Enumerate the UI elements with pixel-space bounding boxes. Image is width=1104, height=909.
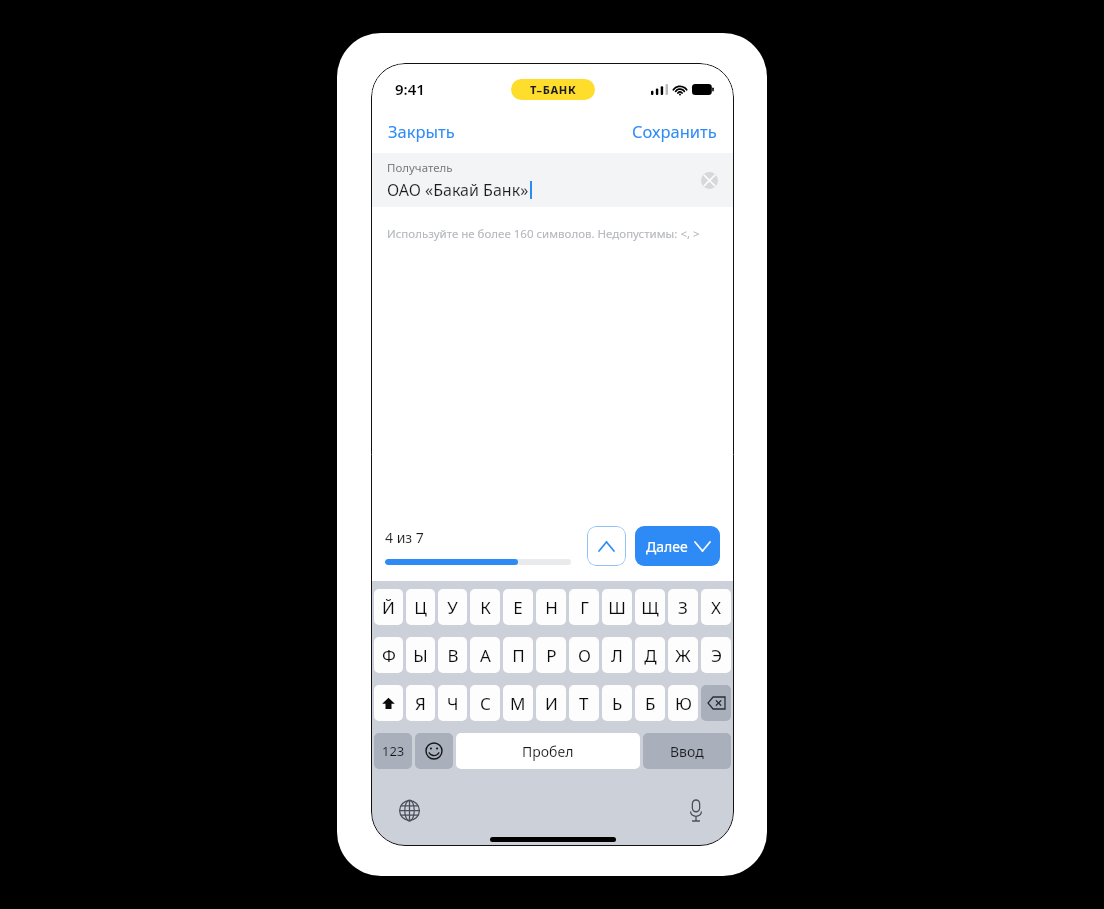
staticText: Щ <box>641 596 659 619</box>
staticText: 123 <box>382 742 405 760</box>
button[interactable]: З <box>668 589 698 625</box>
staticText: Ц <box>414 596 427 619</box>
button[interactable]: П <box>503 637 533 673</box>
staticText: Пробел <box>522 742 574 761</box>
button[interactable]: Т <box>569 685 599 721</box>
button[interactable]: Ж <box>668 637 698 673</box>
button[interactable]: Б <box>635 685 665 721</box>
staticText: Ввод <box>670 742 704 761</box>
button[interactable]: Ч <box>438 685 467 721</box>
staticText: Б <box>645 692 656 715</box>
staticText: Й <box>382 596 395 619</box>
staticText: М <box>510 692 526 715</box>
staticText: О <box>578 644 591 667</box>
button[interactable]: С <box>470 685 500 721</box>
staticText: Закрыть <box>388 120 455 142</box>
button[interactable]: Назад <box>587 526 626 566</box>
button[interactable]: 123 <box>374 733 412 769</box>
staticText: 4 из 7 <box>385 528 424 547</box>
button[interactable]: Е <box>503 589 533 625</box>
button[interactable]: Получатель <box>371 153 734 207</box>
button[interactable]: В <box>438 637 467 673</box>
staticText: Ы <box>413 644 428 667</box>
button[interactable]: Голосовой ввод <box>680 794 712 826</box>
staticText: П <box>512 644 525 667</box>
staticText: К <box>480 596 491 619</box>
button[interactable]: Р <box>536 637 566 673</box>
staticText: Получатель <box>387 160 453 176</box>
button[interactable]: Ю <box>668 685 698 721</box>
staticText: У <box>447 596 458 619</box>
button[interactable]: Н <box>536 589 566 625</box>
button[interactable]: Ы <box>406 637 435 673</box>
staticText: Д <box>644 644 657 667</box>
button[interactable]: Удалить <box>701 685 731 721</box>
button[interactable]: Далее <box>635 526 720 566</box>
button[interactable]: К <box>470 589 500 625</box>
button[interactable]: Э <box>701 637 731 673</box>
staticText: Сохранить <box>632 120 717 142</box>
button[interactable]: У <box>438 589 467 625</box>
staticText: Ю <box>675 692 692 715</box>
staticText: Ч <box>447 692 459 715</box>
button[interactable]: О <box>569 637 599 673</box>
button[interactable]: М <box>503 685 533 721</box>
button[interactable]: Пробел <box>456 733 640 769</box>
button[interactable]: Щ <box>635 589 665 625</box>
button[interactable]: Shift <box>374 685 403 721</box>
staticText: С <box>480 692 491 715</box>
button[interactable]: Ввод <box>643 733 731 769</box>
button[interactable]: Закрыть <box>388 116 455 146</box>
staticText: З <box>678 596 688 619</box>
staticText: Ж <box>675 644 691 667</box>
button[interactable]: Й <box>374 589 403 625</box>
button[interactable]: Я <box>406 685 435 721</box>
button[interactable]: Очистить <box>696 167 722 193</box>
staticText: 9:41 <box>395 79 425 99</box>
staticText: Э <box>711 644 722 667</box>
button[interactable]: Сохранить <box>632 116 717 146</box>
staticText: А <box>480 644 491 667</box>
staticText: Р <box>546 644 557 667</box>
button[interactable]: Х <box>701 589 731 625</box>
button[interactable]: Г <box>569 589 599 625</box>
button[interactable]: Эмодзи <box>415 733 453 769</box>
staticText: В <box>447 644 459 667</box>
staticText: Ш <box>608 596 626 619</box>
staticText: T–БАНК <box>530 82 577 97</box>
button[interactable]: И <box>536 685 566 721</box>
staticText: Х <box>711 596 721 619</box>
button[interactable]: Д <box>635 637 665 673</box>
button[interactable]: Ц <box>406 589 435 625</box>
staticText: И <box>545 692 558 715</box>
staticText: Используйте не более 160 символов. Недоп… <box>387 226 700 242</box>
staticText: Н <box>545 596 558 619</box>
staticText: Л <box>611 644 623 667</box>
staticText: Ь <box>612 692 623 715</box>
staticText: Я <box>415 692 426 715</box>
button[interactable]: Ш <box>602 589 632 625</box>
button[interactable]: А <box>470 637 500 673</box>
button[interactable]: Ь <box>602 685 632 721</box>
staticText: Ф <box>382 644 396 667</box>
button[interactable]: Сменить язык <box>393 794 425 826</box>
button[interactable]: Ф <box>374 637 403 673</box>
staticText: Далее <box>646 537 688 556</box>
staticText: Е <box>513 596 523 619</box>
staticText: Т <box>579 692 589 715</box>
staticText: Г <box>580 596 589 619</box>
staticText: ОАО «Бакай Банк» <box>387 179 529 201</box>
button[interactable]: Л <box>602 637 632 673</box>
